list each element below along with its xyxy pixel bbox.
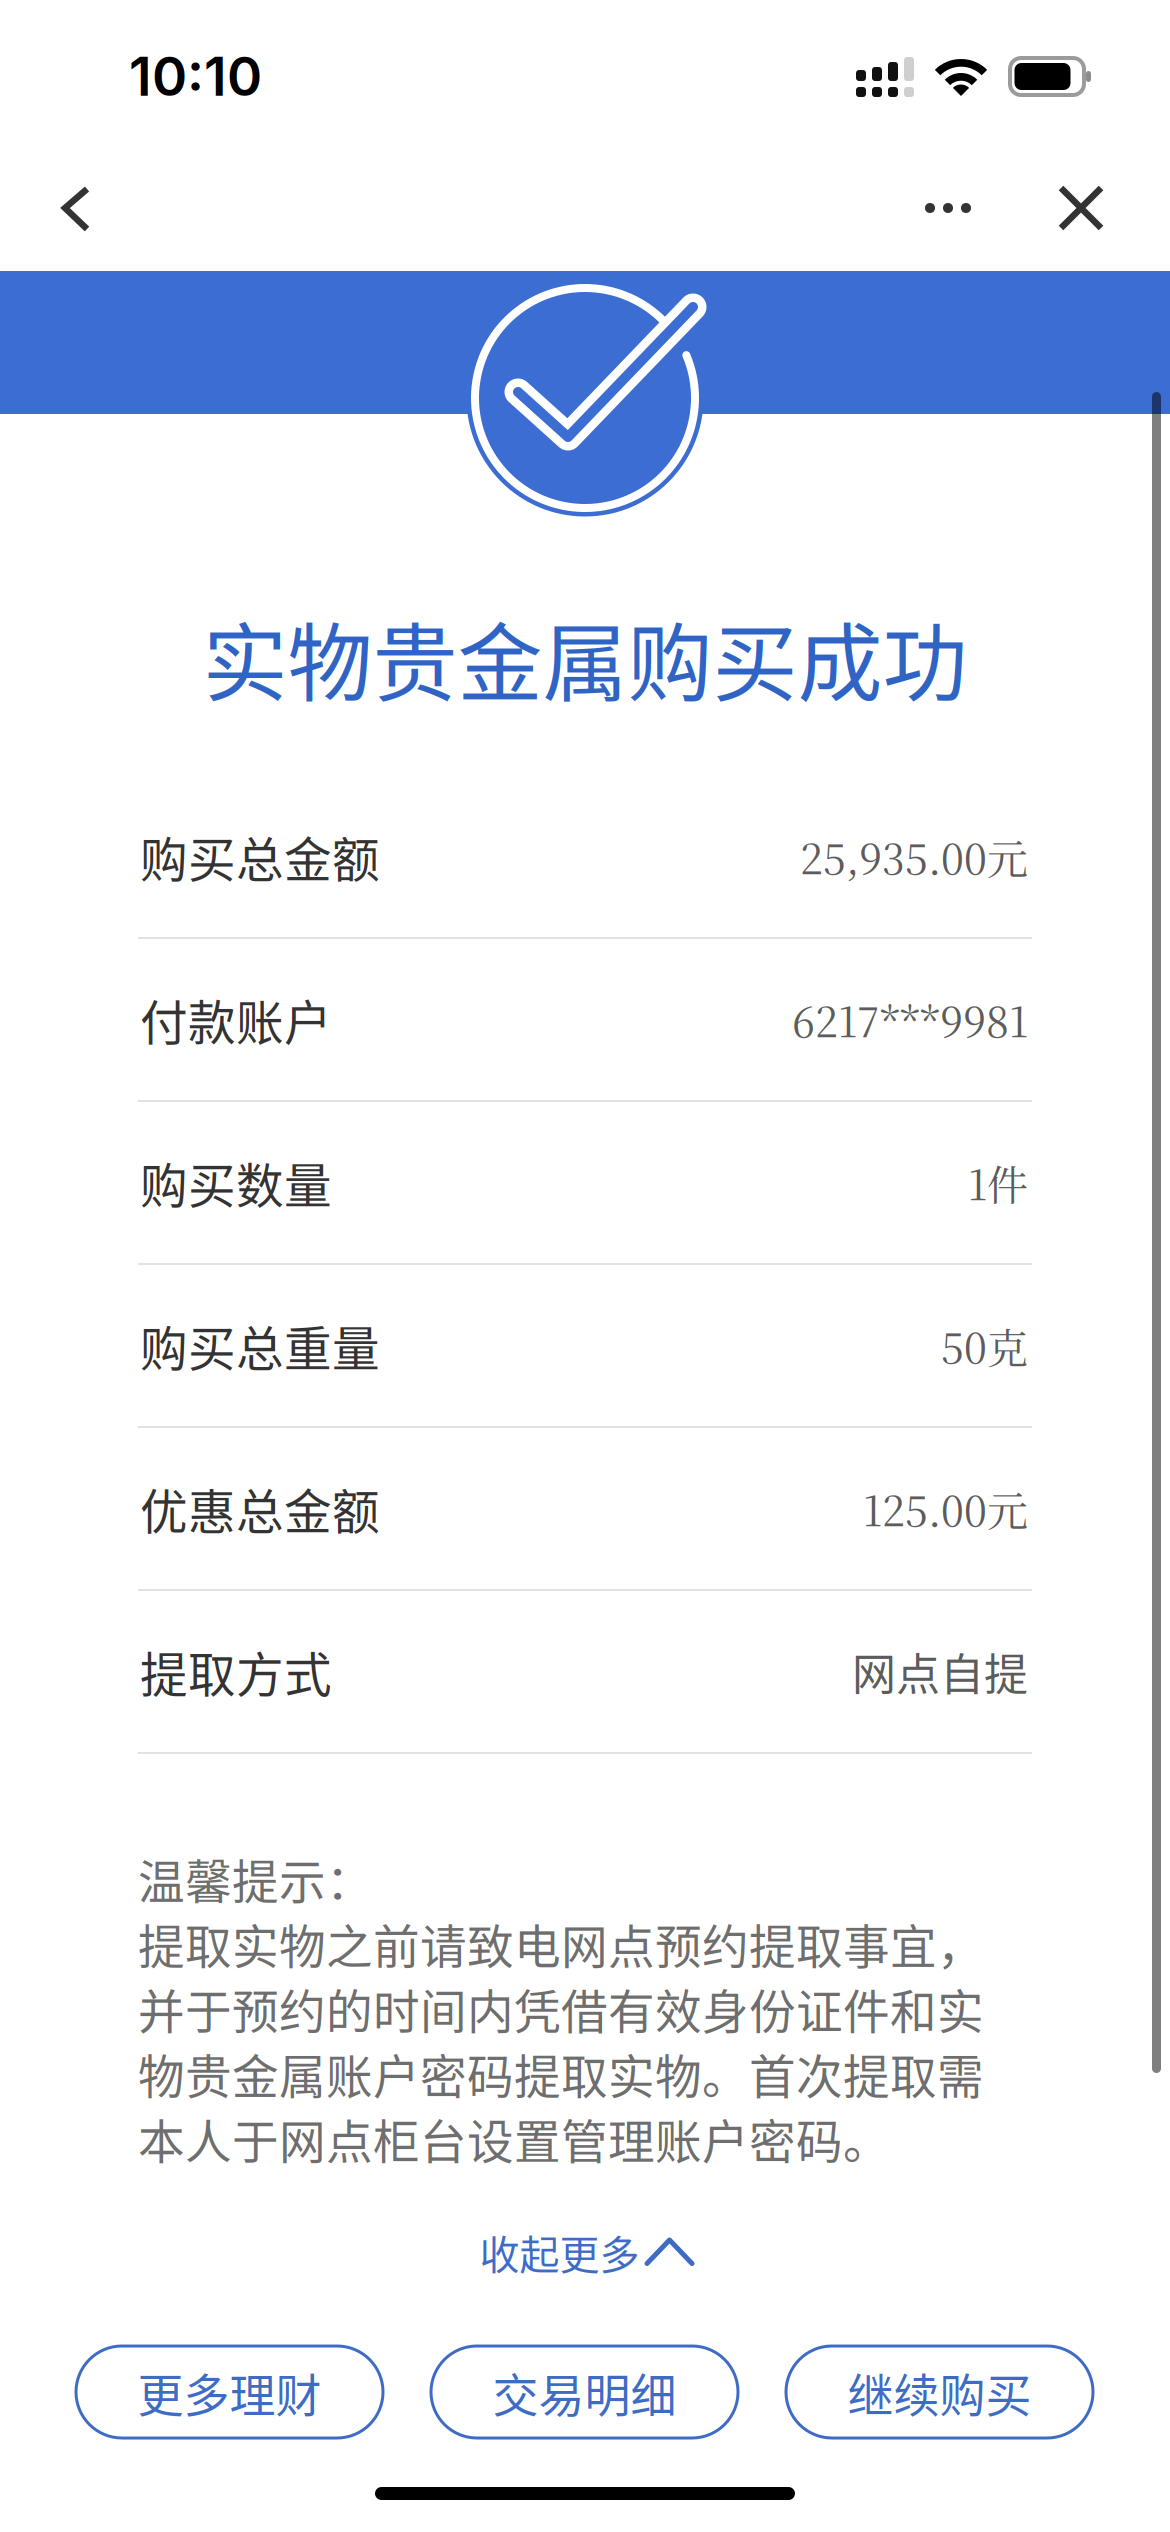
staticText: 收起更多 <box>479 2223 639 2281</box>
staticText: 购买总重量 <box>140 1311 380 1380</box>
staticText: 10:10 <box>129 44 262 108</box>
staticText: 本人于网点柜台设置管理账户密码。 <box>138 2105 890 2172</box>
staticText: 提取实物之前请致电网点预约提取事宜， <box>138 1910 984 1977</box>
staticText: 125.00元 <box>863 1479 1028 1538</box>
staticText: 购买数量 <box>140 1148 332 1217</box>
staticText: 交易明细 <box>492 2359 676 2425</box>
staticText: 25,935.00元 <box>800 827 1028 886</box>
staticText: 购买总金额 <box>140 822 380 891</box>
button[interactable]: 收起更多 <box>437 2207 737 2297</box>
staticText: 实物贵金属购买成功 <box>202 596 967 719</box>
button[interactable]: Back <box>16 150 134 262</box>
staticText: 并于预约的时间内凭借有效身份证件和实 <box>138 1975 984 2042</box>
staticText: 优惠总金额 <box>140 1474 380 1543</box>
staticText: 付款账户 <box>140 985 332 1054</box>
staticText: 温馨提示： <box>138 1845 373 1912</box>
staticText: 1件 <box>968 1153 1028 1212</box>
button[interactable]: More <box>892 152 1004 264</box>
staticText: 继续购买 <box>847 2359 1031 2425</box>
button[interactable]: 交易明细 <box>431 2346 738 2438</box>
button[interactable]: 更多理财 <box>76 2346 383 2438</box>
staticText: 物贵金属账户密码提取实物。首次提取需 <box>138 2040 984 2107</box>
staticText: 6217***9981 <box>792 990 1028 1049</box>
staticText: 50克 <box>941 1316 1028 1375</box>
staticText: 网点自提 <box>852 1640 1028 1703</box>
button[interactable]: Close <box>1021 150 1139 264</box>
staticText: 提取方式 <box>140 1637 332 1706</box>
button[interactable]: 继续购买 <box>786 2346 1093 2438</box>
staticText: 更多理财 <box>137 2359 321 2425</box>
